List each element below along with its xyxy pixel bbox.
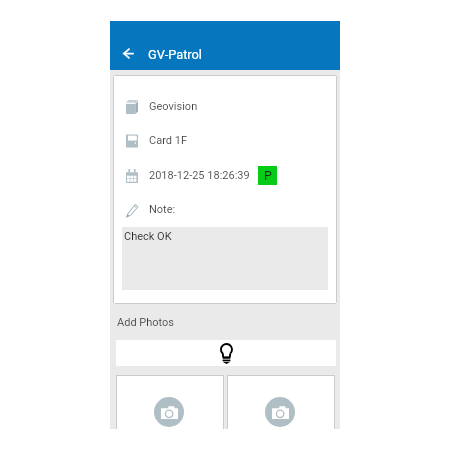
button[interactable]: Add photo [116,375,224,429]
button[interactable]: Tip [116,340,336,366]
staticText: Add Photos [117,316,175,329]
staticText: 2018-12-25 18:26:39 [149,169,250,182]
staticText: Geovision [149,100,198,113]
staticText: GV-Patrol [148,47,202,62]
button[interactable]: Add photo [227,375,335,429]
staticText: Check OK [124,230,172,243]
button[interactable]: Card 1F [113,123,337,158]
staticText: Card 1F [149,134,187,147]
staticText: P [264,168,272,183]
button[interactable]: Geovision [113,89,337,124]
button[interactable]: Note: [113,192,337,227]
button[interactable]: Check OK [122,227,328,290]
staticText: Note: [149,203,176,216]
button[interactable]: 2018-12-25 18:26:39 [113,158,337,193]
button[interactable]: Navigate up [117,42,140,65]
